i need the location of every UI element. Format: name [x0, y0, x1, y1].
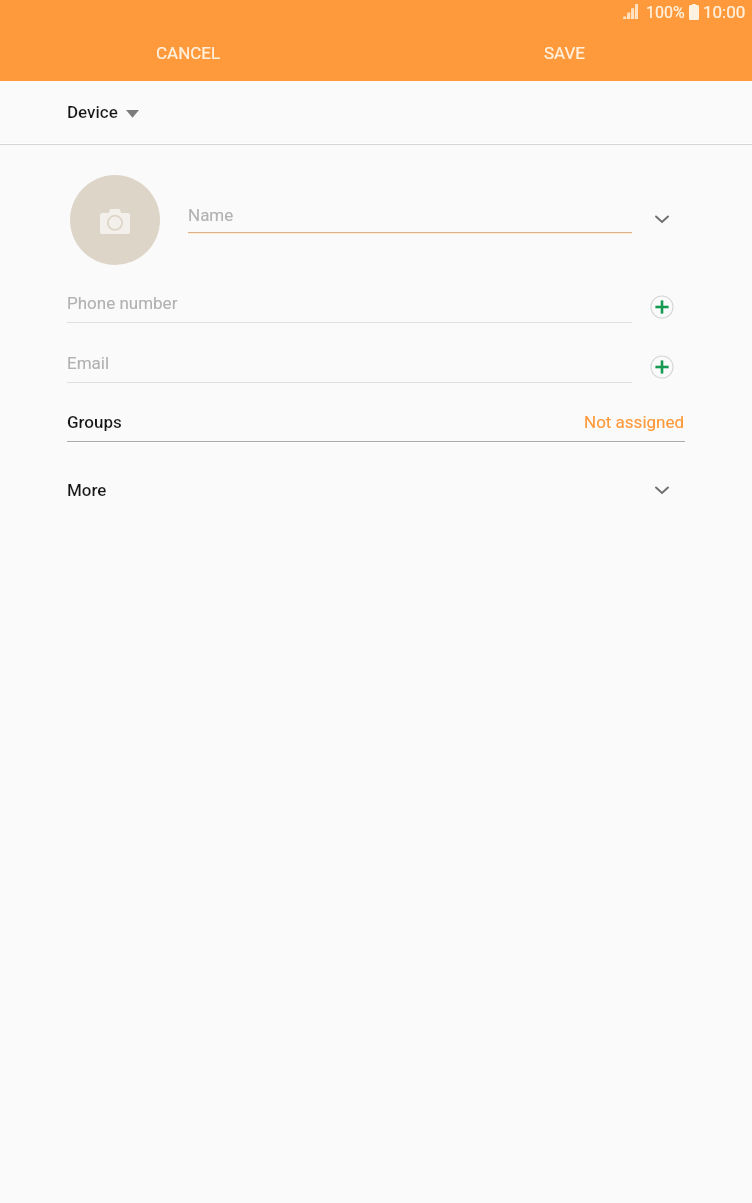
staticText: CANCEL	[156, 43, 221, 63]
button[interactable]: Device	[67, 96, 139, 128]
button[interactable]: Add email	[638, 343, 686, 391]
button[interactable]: Expand more	[638, 466, 686, 514]
button[interactable]: Add photo	[70, 175, 160, 265]
button[interactable]: SAVE	[376, 24, 752, 81]
staticText: Not assigned	[584, 412, 685, 432]
staticText: Email	[67, 353, 110, 373]
staticText: 100%	[646, 3, 685, 22]
button[interactable]: Add phone number	[638, 283, 686, 331]
staticText: Groups	[67, 412, 122, 432]
button[interactable]: Name	[188, 200, 632, 240]
button[interactable]: More	[67, 477, 674, 507]
staticText: SAVE	[544, 43, 585, 63]
button[interactable]: Expand name	[638, 195, 686, 243]
button[interactable]: Phone number	[67, 293, 632, 326]
staticText: Name	[188, 205, 234, 225]
staticText: Device	[67, 102, 118, 122]
button[interactable]: Email	[67, 353, 632, 386]
staticText: More	[67, 480, 107, 500]
button[interactable]: Groups	[67, 409, 685, 445]
staticText: 10:00	[703, 2, 746, 22]
staticText: Phone number	[67, 293, 178, 313]
button[interactable]: CANCEL	[0, 24, 376, 81]
